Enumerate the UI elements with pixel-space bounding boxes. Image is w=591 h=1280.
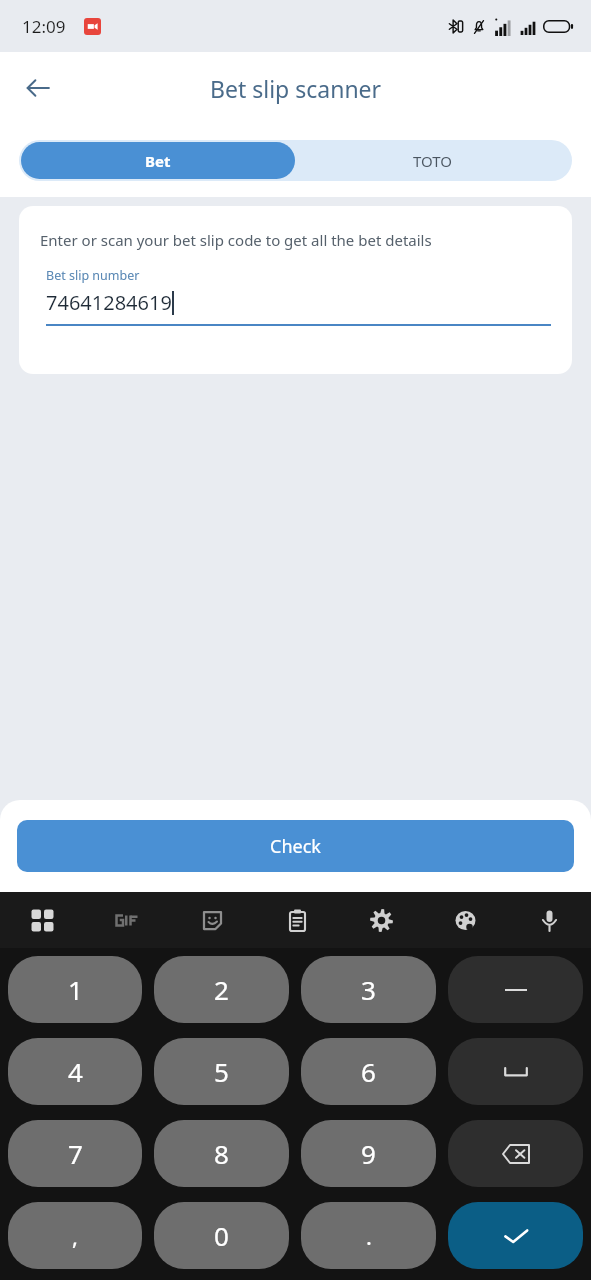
button[interactable]: Space	[448, 1038, 583, 1105]
button[interactable]: 9	[301, 1120, 436, 1187]
staticText: 5	[214, 1054, 229, 1089]
button[interactable]: Bet slip number	[46, 267, 551, 326]
staticText: 4	[68, 1054, 83, 1089]
button[interactable]: 8	[154, 1120, 289, 1187]
button[interactable]: 2	[154, 956, 289, 1023]
button[interactable]: Apps	[0, 892, 85, 948]
staticText: 8	[214, 1136, 229, 1171]
button[interactable]: Enter	[448, 1202, 583, 1269]
button[interactable]: 7	[8, 1120, 142, 1187]
staticText: TOTO	[413, 151, 453, 171]
staticText: Bet slip scanner	[210, 73, 382, 104]
staticText: 1	[68, 972, 83, 1007]
button[interactable]: Check	[17, 820, 574, 872]
staticText: .	[366, 1221, 372, 1251]
button[interactable]: 0	[154, 1202, 289, 1269]
button[interactable]: Clipboard	[255, 892, 339, 948]
staticText: 2	[214, 972, 229, 1007]
button[interactable]: Bet	[21, 142, 295, 179]
button[interactable]: TOTO	[295, 142, 570, 179]
staticText: 7	[68, 1136, 83, 1171]
button[interactable]: Themes	[423, 892, 507, 948]
button[interactable]: Back	[14, 64, 62, 112]
button[interactable]: Stickers	[170, 892, 255, 948]
staticText: Check	[270, 834, 321, 859]
button[interactable]: 6	[301, 1038, 436, 1105]
button[interactable]: Minus	[448, 956, 583, 1023]
button[interactable]: 5	[154, 1038, 289, 1105]
staticText: Bet slip number	[46, 267, 140, 284]
staticText: Bet	[145, 151, 171, 171]
button[interactable]: 1	[8, 956, 142, 1023]
staticText: ,	[72, 1221, 78, 1251]
staticText: 6	[361, 1054, 376, 1089]
button[interactable]: Backspace	[448, 1120, 583, 1187]
staticText: 9	[361, 1136, 376, 1171]
button[interactable]: 3	[301, 956, 436, 1023]
staticText: 0	[214, 1218, 229, 1253]
staticText: 12:09	[22, 15, 66, 38]
button[interactable]: 4	[8, 1038, 142, 1105]
staticText: 74641284619	[46, 289, 172, 316]
button[interactable]: .	[301, 1202, 436, 1269]
button[interactable]: GIF	[85, 892, 170, 948]
button[interactable]: Settings	[339, 892, 423, 948]
staticText: Enter or scan your bet slip code to get …	[40, 230, 432, 250]
button[interactable]: Voice input	[507, 892, 591, 948]
button[interactable]: ,	[8, 1202, 142, 1269]
staticText: 3	[361, 972, 376, 1007]
